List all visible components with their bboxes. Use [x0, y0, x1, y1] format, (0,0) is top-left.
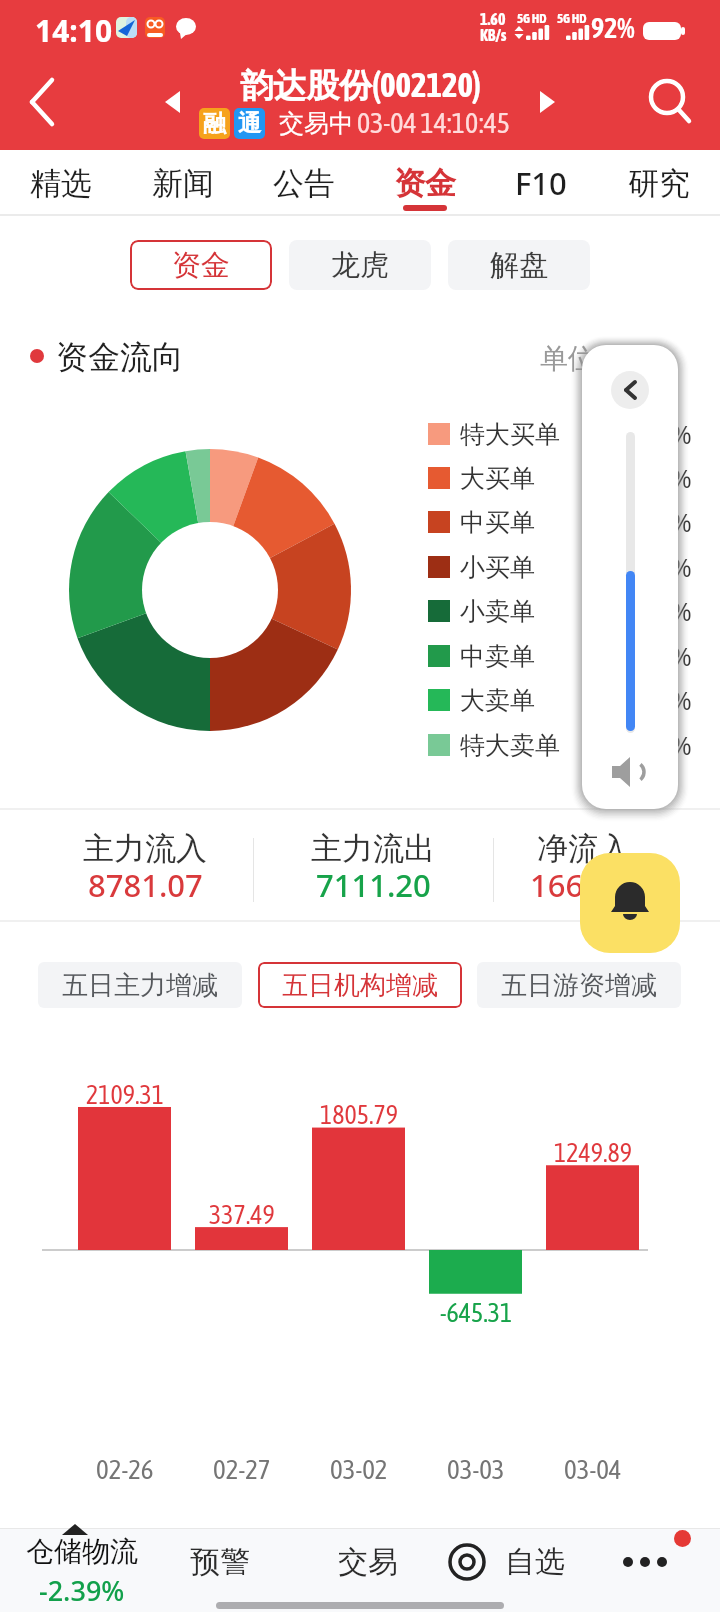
staticText: 8781.07 — [88, 864, 203, 904]
staticText: 龙虎 — [331, 247, 389, 284]
staticText: 中卖单 — [460, 641, 535, 672]
staticText: 5G HD — [557, 11, 587, 26]
staticText: 交易 — [338, 1543, 398, 1581]
button[interactable]: 公告 — [271, 158, 337, 208]
staticText: -2.39% — [39, 1572, 125, 1604]
staticText: 预警 — [190, 1543, 250, 1581]
staticText: 公告 — [273, 164, 335, 203]
button[interactable] — [10, 1528, 160, 1612]
button[interactable]: 研究 — [626, 158, 692, 208]
staticText: 03-03 — [447, 1454, 505, 1485]
staticText: 14:10 — [35, 10, 113, 50]
staticText: 特大买单 — [460, 419, 560, 450]
staticText: % — [671, 728, 692, 762]
staticText: 韵达股份(002120) — [240, 65, 481, 107]
staticText: F10 — [515, 162, 567, 204]
staticText: 03-04 — [564, 1454, 622, 1485]
staticText: 小买单 — [460, 552, 535, 583]
staticText: 337.49 — [209, 1200, 275, 1230]
button[interactable] — [612, 1534, 702, 1590]
staticText: KB/s — [480, 26, 507, 42]
staticText: 92% — [591, 12, 635, 44]
staticText: 精选 — [30, 164, 92, 203]
staticText: 资金 — [172, 247, 230, 284]
staticText: % — [671, 417, 692, 451]
staticText: 五日主力增减 — [62, 969, 218, 1002]
staticText: 五日游资增减 — [501, 969, 657, 1002]
staticText: 自选 — [505, 1543, 565, 1581]
button[interactable]: 五日机构增减 — [258, 962, 462, 1008]
staticText: 通 — [238, 109, 261, 138]
staticText: % — [671, 639, 692, 673]
button[interactable] — [0, 56, 720, 150]
staticText: 特大卖单 — [460, 730, 560, 761]
button[interactable]: F10 — [508, 158, 574, 208]
staticText: 02-26 — [96, 1454, 154, 1485]
button[interactable]: 资金 — [392, 158, 458, 208]
button[interactable]: 自选 — [446, 1534, 572, 1590]
button[interactable] — [580, 853, 680, 953]
staticText: 5G HD — [517, 11, 547, 26]
staticText: 小卖单 — [460, 596, 535, 627]
staticText: 新闻 — [152, 164, 214, 203]
staticText: % — [671, 594, 692, 628]
staticText: % — [671, 683, 692, 717]
staticText: 03-04 14:10:45 — [357, 107, 510, 139]
staticText: -645.31 — [440, 1298, 513, 1328]
staticText: 7111.20 — [316, 864, 431, 904]
button[interactable]: 交易 — [328, 1540, 408, 1584]
staticText: 大卖单 — [460, 685, 535, 716]
button[interactable]: 解盘 — [448, 240, 590, 290]
staticText: 资金流向 — [56, 337, 184, 377]
staticText: % — [671, 461, 692, 495]
button[interactable] — [582, 345, 678, 809]
button[interactable]: 新闻 — [150, 158, 216, 208]
staticText: 五日机构增减 — [282, 969, 438, 1002]
button[interactable]: 龙虎 — [289, 240, 431, 290]
staticText: % — [671, 550, 692, 584]
staticText: 2109.31 — [86, 1080, 164, 1110]
staticText: % — [671, 505, 692, 539]
staticText: 03-02 — [330, 1454, 388, 1485]
staticText: 资金 — [394, 164, 456, 203]
button[interactable] — [611, 371, 649, 409]
staticText: 02-27 — [213, 1454, 271, 1485]
staticText: 1805.79 — [320, 1100, 398, 1130]
staticText: 大买单 — [460, 463, 535, 494]
staticText: 1249.89 — [554, 1138, 632, 1168]
staticText: 主力流出 — [311, 829, 435, 868]
staticText: 单位:万元 — [540, 338, 660, 376]
button[interactable]: 五日主力增减 — [38, 962, 242, 1008]
button[interactable]: 精选 — [28, 158, 94, 208]
staticText: 研究 — [628, 164, 690, 203]
staticText: 净流入 — [537, 829, 630, 868]
staticText: 1669.87 — [530, 864, 645, 904]
staticText: 中买单 — [460, 507, 535, 538]
staticText: 1.60 — [480, 10, 506, 26]
staticText: 交易中 — [279, 108, 354, 139]
button[interactable]: 预警 — [180, 1540, 260, 1584]
staticText: 解盘 — [490, 247, 548, 284]
staticText: 融 — [203, 109, 226, 138]
staticText: 仓储物流 — [26, 1534, 138, 1568]
button[interactable]: 资金 — [130, 240, 272, 290]
button[interactable]: 五日游资增减 — [477, 962, 681, 1008]
staticText: 主力流入 — [83, 829, 207, 868]
